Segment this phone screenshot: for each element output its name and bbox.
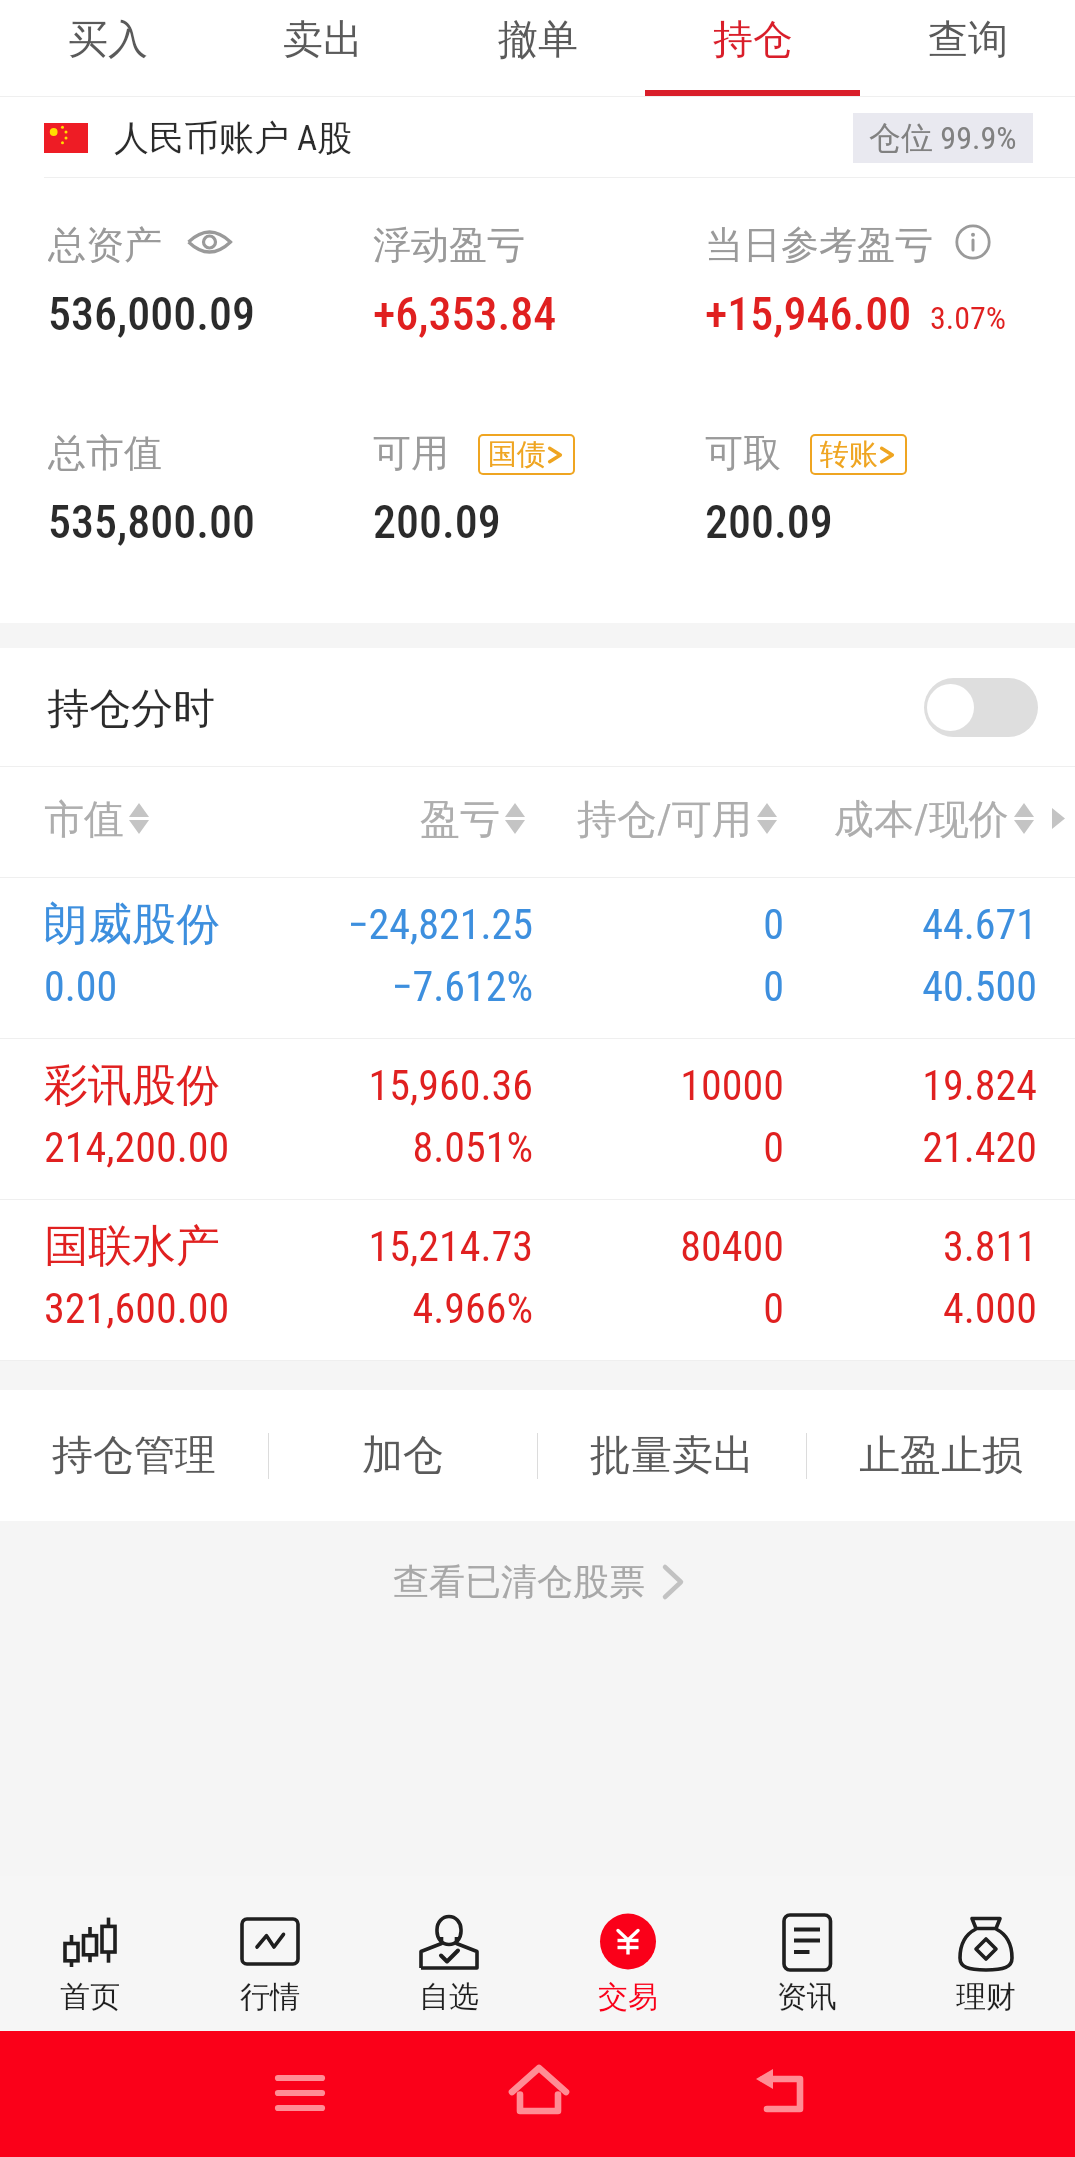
staticText: 19.824 <box>784 1061 1037 1110</box>
staticText: 朗威股份 <box>44 897 287 952</box>
button[interactable]: 理财 <box>896 1876 1075 2031</box>
staticText: 21.420 <box>784 1123 1037 1172</box>
staticText: 买入 <box>68 14 148 64</box>
staticText: 交易 <box>598 1978 658 2016</box>
staticText: +15,946.00 <box>705 287 912 341</box>
staticText: 可取 <box>705 429 781 471</box>
staticText: 国债 <box>488 436 546 473</box>
staticText: 撤单 <box>498 14 578 64</box>
staticText: 536,000.09 <box>48 287 256 341</box>
staticText: 3.07% <box>930 299 1007 337</box>
staticText: 盈亏 <box>420 794 500 844</box>
staticText: 行情 <box>240 1978 300 2016</box>
button[interactable]: 国债 <box>480 436 573 473</box>
staticText: 15,214.73 <box>287 1222 533 1271</box>
button[interactable]: 加仓 <box>268 1390 537 1521</box>
staticText: 40.500 <box>784 962 1037 1011</box>
staticText: 0 <box>533 962 784 1011</box>
button[interactable]: Back <box>720 2033 840 2153</box>
staticText: 查看已清仓股票 <box>393 1559 645 1604</box>
staticText: −7.612% <box>287 962 533 1011</box>
staticText: 总资产 <box>48 221 162 263</box>
staticText: 仓位 99.9% <box>869 118 1017 158</box>
staticText: 总市值 <box>48 429 162 471</box>
button[interactable]: 首页 <box>0 1876 180 2031</box>
staticText: 人民币账户 A股 <box>114 116 353 160</box>
staticText: 8.051% <box>287 1123 533 1172</box>
staticText: 321,600.00 <box>44 1284 287 1333</box>
staticText: 自选 <box>419 1978 479 2016</box>
button[interactable]: 持仓/可用 <box>525 767 777 870</box>
button[interactable]: 朗威股份 <box>0 878 1075 1039</box>
staticText: 10000 <box>533 1061 784 1110</box>
button[interactable]: 撤单 <box>430 0 645 97</box>
staticText: 200.09 <box>705 495 833 549</box>
staticText: 80400 <box>533 1222 784 1271</box>
staticText: 资讯 <box>777 1978 837 2016</box>
staticText: 0.00 <box>44 962 287 1011</box>
staticText: 0 <box>533 1284 784 1333</box>
staticText: 止盈止损 <box>859 1430 1023 1482</box>
staticText: 4.000 <box>784 1284 1037 1333</box>
button[interactable]: Home <box>479 2033 599 2153</box>
button[interactable]: 查看已清仓股票 <box>0 1559 1075 1604</box>
button[interactable]: 成本/现价 <box>777 767 1034 870</box>
staticText: 彩讯股份 <box>44 1058 287 1113</box>
staticText: 成本/现价 <box>834 794 1009 844</box>
button[interactable]: 国联水产 <box>0 1200 1075 1361</box>
staticText: 200.09 <box>373 495 501 549</box>
staticText: 查询 <box>928 14 1008 64</box>
button[interactable]: 市值 <box>44 767 285 870</box>
staticText: 市值 <box>44 794 124 844</box>
staticText: 当日参考盈亏 <box>705 221 933 263</box>
staticText: 批量卖出 <box>590 1430 754 1482</box>
staticText: 持仓分时 <box>47 683 215 736</box>
staticText: 44.671 <box>784 900 1037 949</box>
button[interactable]: 资讯 <box>717 1876 896 2031</box>
staticText: 持仓管理 <box>52 1430 216 1482</box>
button[interactable]: 人民币账户 A股 <box>0 97 1075 178</box>
staticText: 持仓 <box>713 14 793 64</box>
button[interactable]: 止盈止损 <box>806 1390 1075 1521</box>
staticText: 0 <box>533 1123 784 1172</box>
button[interactable]: 批量卖出 <box>537 1390 806 1521</box>
staticText: 国联水产 <box>44 1219 287 1274</box>
staticText: 浮动盈亏 <box>373 221 525 263</box>
button[interactable]: 买入 <box>0 0 215 97</box>
staticText: +6,353.84 <box>373 287 557 341</box>
staticText: 卖出 <box>283 14 363 64</box>
button[interactable]: 盈亏 <box>285 767 525 870</box>
staticText: 3.811 <box>784 1222 1037 1271</box>
button[interactable]: 持仓管理 <box>0 1390 268 1521</box>
button[interactable]: 卖出 <box>215 0 430 97</box>
button[interactable]: 持仓 <box>645 0 860 97</box>
staticText: −24,821.25 <box>287 900 533 949</box>
button[interactable]: Toggle intraday chart <box>924 678 1038 737</box>
staticText: 15,960.36 <box>287 1061 533 1110</box>
staticText: 535,800.00 <box>48 495 256 549</box>
button[interactable]: 交易 <box>538 1876 717 2031</box>
staticText: 0 <box>533 900 784 949</box>
button[interactable]: Menu <box>240 2033 360 2153</box>
button[interactable]: 自选 <box>359 1876 538 2031</box>
staticText: 加仓 <box>362 1430 444 1482</box>
staticText: 转账 <box>820 436 878 473</box>
button[interactable]: Info <box>955 224 991 260</box>
staticText: 4.966% <box>287 1284 533 1333</box>
button[interactable]: 转账 <box>812 436 905 473</box>
staticText: 理财 <box>956 1978 1016 2016</box>
staticText: 首页 <box>60 1978 120 2016</box>
button[interactable]: 行情 <box>180 1876 359 2031</box>
button[interactable]: 查询 <box>860 0 1075 97</box>
staticText: 214,200.00 <box>44 1123 287 1172</box>
button[interactable]: 彩讯股份 <box>0 1039 1075 1200</box>
staticText: 持仓/可用 <box>577 794 752 844</box>
staticText: 可用 <box>373 429 449 471</box>
button[interactable]: Hide balance <box>187 227 232 257</box>
